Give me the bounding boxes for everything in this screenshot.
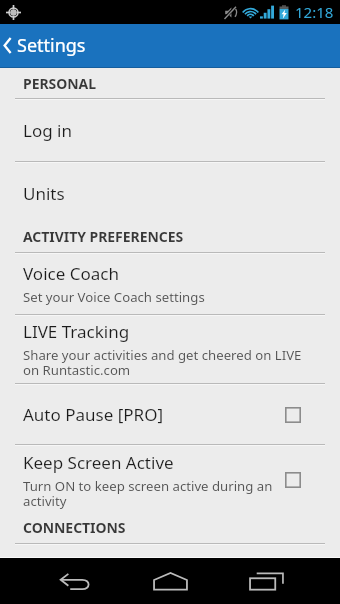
- staticText: Voice Coach: [23, 262, 119, 285]
- button[interactable]: Home: [142, 558, 198, 604]
- staticText: Settings: [17, 33, 86, 58]
- button[interactable]: Keep Screen Active: [0, 446, 340, 514]
- staticText: Units: [23, 182, 65, 205]
- button[interactable]: Back: [0, 24, 340, 67]
- button[interactable]: Auto Pause: [285, 407, 301, 423]
- staticText: Log in: [23, 119, 72, 142]
- staticText: PERSONAL: [23, 74, 97, 93]
- staticText: Share your activities and get cheered on…: [23, 346, 312, 379]
- button[interactable]: Back: [47, 558, 103, 604]
- staticText: CONNECTIONS: [23, 518, 126, 537]
- staticText: Turn ON to keep screen active during an …: [23, 477, 283, 510]
- button[interactable]: Keep Screen Active: [285, 472, 301, 488]
- staticText: 12:18: [295, 2, 334, 22]
- button[interactable]: Log in: [0, 100, 340, 161]
- button[interactable]: LIVE Tracking: [0, 316, 340, 383]
- button[interactable]: Auto Pause [PRO]: [0, 385, 340, 444]
- staticText: ACTIVITY PREFERENCES: [23, 227, 184, 246]
- staticText: Keep Screen Active: [23, 451, 174, 474]
- staticText: Set your Voice Coach settings: [23, 288, 205, 306]
- button[interactable]: Voice Coach: [0, 254, 340, 314]
- button[interactable]: Units: [0, 163, 340, 223]
- staticText: LIVE Tracking: [23, 320, 130, 343]
- other: Back: [4, 38, 11, 53]
- staticText: Auto Pause [PRO]: [23, 403, 164, 426]
- button[interactable]: Recent apps: [238, 558, 294, 604]
